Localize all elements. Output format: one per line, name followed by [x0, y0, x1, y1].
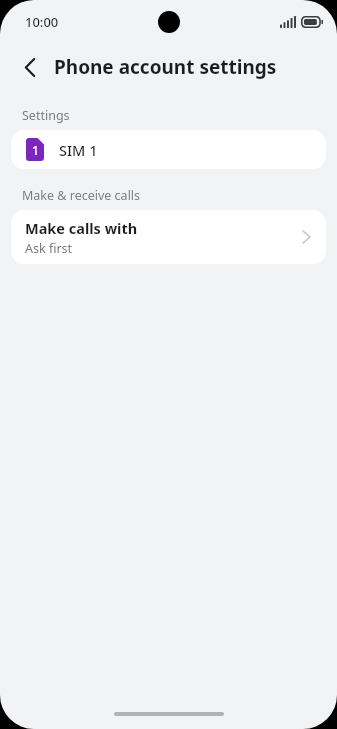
staticText: Make & receive calls	[22, 187, 141, 204]
staticText: Phone account settings	[54, 54, 277, 80]
staticText: 1	[32, 142, 39, 158]
staticText: Make calls with	[25, 218, 138, 238]
staticText: Settings	[22, 107, 70, 124]
staticText: Ask first	[25, 240, 73, 257]
button[interactable]: 1	[11, 130, 326, 169]
staticText: SIM 1	[59, 140, 98, 160]
button[interactable]: Make calls with	[11, 210, 326, 264]
staticText: 10:00	[25, 13, 59, 31]
button[interactable]: Back	[12, 49, 48, 85]
